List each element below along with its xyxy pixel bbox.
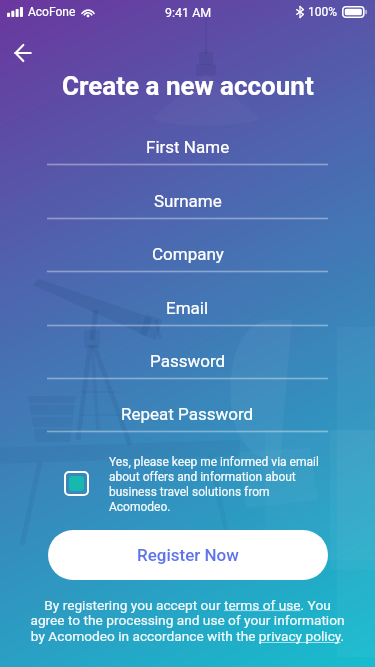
staticText: Password (150, 351, 226, 371)
staticText: Yes, please keep me informed via email a… (109, 455, 322, 514)
button[interactable]: Register Now (48, 530, 328, 580)
staticText: Company (152, 244, 224, 264)
staticText: Repeat Password (121, 404, 254, 424)
button[interactable]: Company (47, 244, 328, 273)
staticText: Create a new account (62, 71, 314, 101)
staticText: 100% (308, 5, 338, 19)
button[interactable]: Repeat Password (47, 404, 328, 433)
staticText: 9:41 AM (165, 5, 212, 20)
button[interactable]: Yes, please keep me informed via email a… (64, 455, 322, 514)
button[interactable]: Back (3, 33, 43, 73)
staticText: By registering you accept our terms of u… (28, 597, 347, 645)
staticText: First Name (146, 137, 230, 157)
button[interactable]: First Name (47, 137, 328, 166)
button[interactable]: Surname (47, 191, 328, 220)
staticText: Register Now (137, 545, 239, 565)
staticText: Email (166, 298, 209, 318)
staticText: AcoFone (28, 5, 76, 19)
button[interactable]: Password (47, 351, 328, 380)
staticText: Surname (154, 191, 222, 211)
button[interactable]: Email (47, 298, 328, 327)
